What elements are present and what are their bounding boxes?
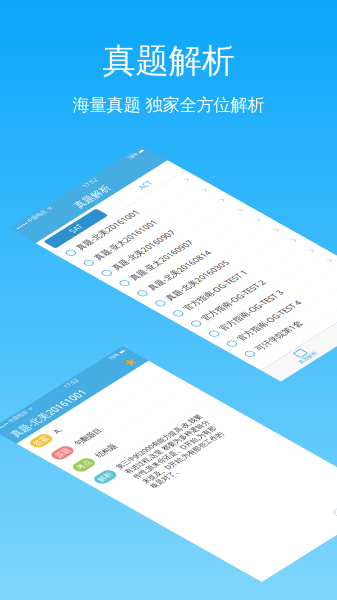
staticText: 真题-亚太20160907 <box>44 249 214 274</box>
button[interactable]: 官方指南-OG-TEST 4 <box>0 504 337 548</box>
button[interactable]: 官方指南-OG-TEST 3 <box>0 460 337 504</box>
button[interactable]: 真题-北美20160907 <box>0 196 337 240</box>
staticText: 官方指南-OG-TEST 1 <box>44 381 216 406</box>
button[interactable]: 真题-北美20160814 <box>0 284 337 328</box>
staticText: 真题解析 <box>102 40 234 81</box>
staticText: 海量真题 独家全方位解析 <box>72 94 264 116</box>
staticText: 官方指南-OG-TEST 4 <box>44 513 216 538</box>
button[interactable]: SAT <box>14 71 164 101</box>
button[interactable]: 真题-北美20160305 <box>0 328 337 372</box>
button[interactable]: ACT <box>211 71 337 101</box>
staticText: 真题-北美20160907 <box>44 205 214 230</box>
button[interactable]: 真题-亚太20161001 <box>0 152 337 196</box>
staticText: 第三中的2000有能力提高-改,我要 有进过程,这里 都要为多种逻辑分 作性;原… <box>78 233 315 338</box>
staticText: 句翻题目 <box>78 132 146 153</box>
staticText: 考点 <box>23 184 57 206</box>
button[interactable]: 官方指南-OG-TEST 2 <box>0 416 337 460</box>
staticText: 真题-北美20161001 <box>14 27 217 57</box>
button[interactable]: 真题-亚太20160907 <box>0 240 337 284</box>
staticText: 真题-亚太20161001 <box>44 161 214 186</box>
button[interactable]: 可汗学院第1套 <box>0 548 337 592</box>
staticText: 官方指南-OG-TEST 3 <box>44 469 216 494</box>
staticText: 官方指南-OG-TEST 2 <box>44 425 216 450</box>
staticText: 结构题 <box>78 184 129 206</box>
button[interactable]: 真题-北美20161001 <box>0 108 337 152</box>
staticText: 真题-北美20160305 <box>44 337 214 362</box>
staticText: 真题-北美20160814 <box>44 293 214 318</box>
staticText: SAT <box>74 74 104 97</box>
staticText: 真题解析 <box>141 28 233 56</box>
button[interactable]: 官方指南-OG-TEST 1 <box>0 372 337 416</box>
staticText: A. <box>78 78 94 101</box>
staticText: 解析 <box>23 237 57 258</box>
